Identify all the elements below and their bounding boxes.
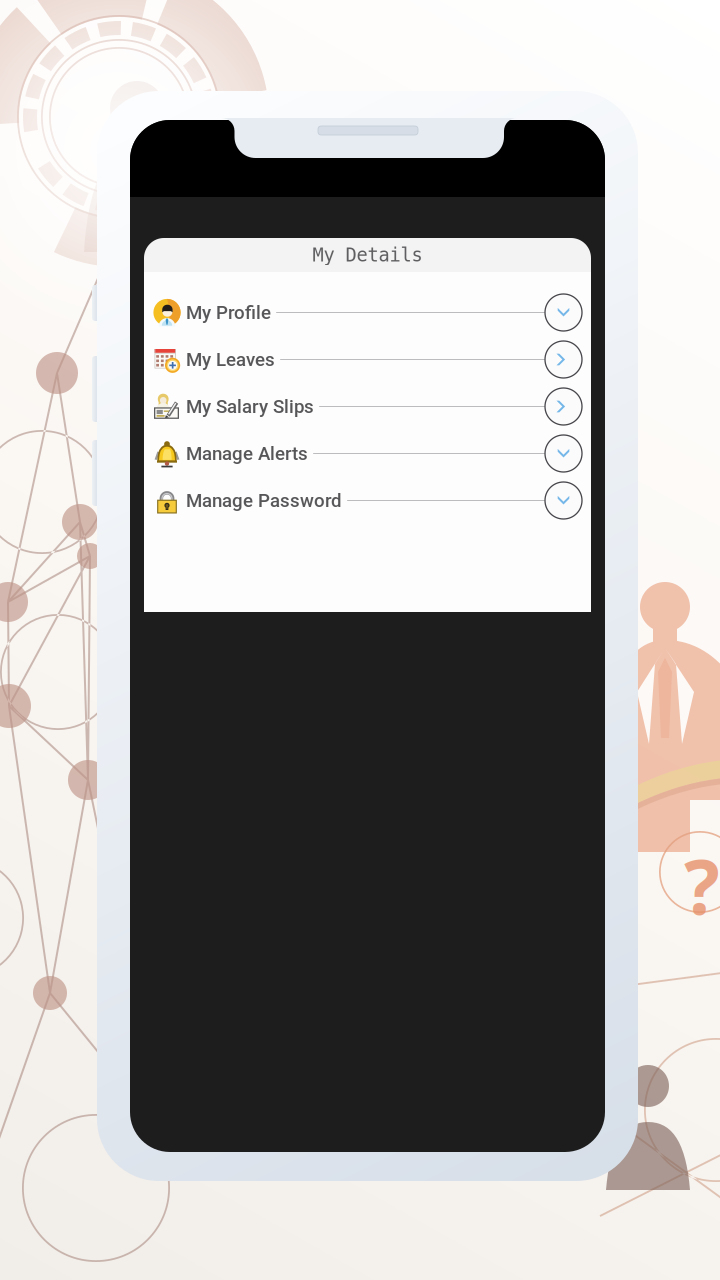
staticText: ?: [684, 836, 720, 935]
staticText: My Leaves: [186, 349, 275, 370]
button[interactable]: My Leaves: [144, 336, 591, 383]
button[interactable]: Manage Password: [144, 477, 591, 524]
staticText: My Profile: [186, 302, 271, 323]
staticText: My Details: [312, 244, 422, 266]
staticText: Manage Password: [186, 490, 342, 511]
button[interactable]: My Salary Slips: [144, 383, 591, 430]
button[interactable]: My Profile: [144, 289, 591, 336]
button[interactable]: Manage Alerts: [144, 430, 591, 477]
staticText: My Salary Slips: [186, 396, 314, 417]
staticText: Manage Alerts: [186, 443, 308, 464]
